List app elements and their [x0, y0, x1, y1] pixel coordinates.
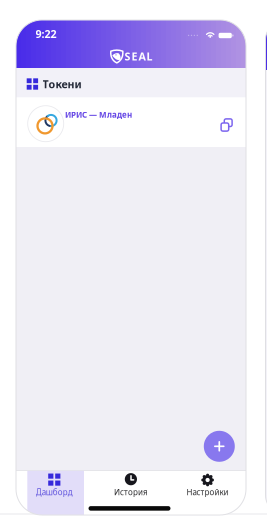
button[interactable]: Настройки — [169, 471, 246, 503]
staticText: Дашборд — [36, 487, 73, 497]
staticText: 9:22 — [35, 27, 56, 41]
staticText: История — [114, 487, 148, 497]
button[interactable]: Копиране — [217, 116, 235, 134]
button[interactable]: Добавяне на токен — [204, 431, 235, 462]
staticText: SEAL — [124, 49, 152, 63]
button[interactable]: История — [93, 471, 169, 503]
button[interactable]: ИРИС — Младен — [16, 97, 246, 147]
staticText: Настройки — [186, 487, 228, 497]
staticText: Токени — [42, 77, 81, 91]
staticText: ИРИС — Младен — [65, 109, 132, 120]
button[interactable]: Дашборд — [16, 471, 93, 503]
